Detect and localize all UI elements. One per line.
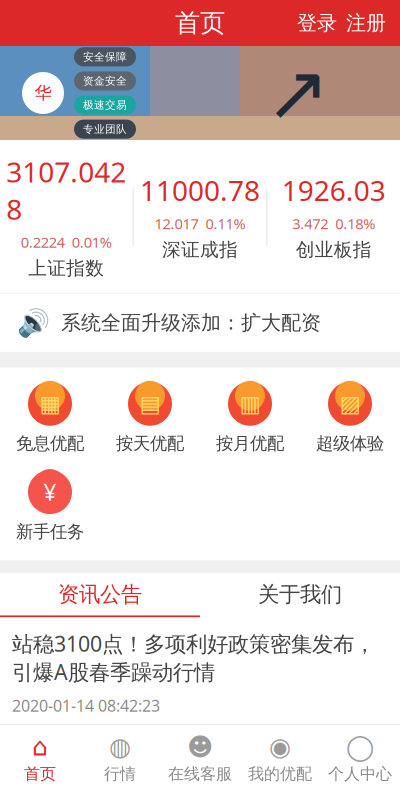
staticText: 个人中心 [328, 764, 392, 784]
button[interactable]: 关于我们 [200, 573, 400, 617]
button[interactable]: ◉ [240, 732, 320, 784]
staticText: ⌂ [32, 732, 48, 761]
button[interactable]: ☻ [160, 732, 240, 784]
staticText: 资讯公告 [58, 581, 142, 607]
staticText: 登录 [297, 11, 337, 35]
button[interactable]: ▥ [200, 382, 300, 454]
staticText: ¥ [43, 477, 56, 507]
staticText: 站稳3100点！多项利好政策密集发布，引爆A股春季躁动行情 [12, 629, 375, 686]
button[interactable]: ▦ [0, 382, 100, 454]
button[interactable]: 注册 [337, 11, 386, 35]
staticText: ▥ [239, 391, 260, 417]
staticText: 专业团队 [83, 123, 127, 136]
staticText: 0.11% [205, 214, 245, 233]
staticText: 行情 [104, 764, 136, 784]
staticText: 创业板指 [296, 238, 372, 261]
button[interactable]: ¥ [0, 470, 100, 542]
button[interactable]: 资讯公告 [0, 573, 200, 617]
button[interactable]: ▤ [100, 382, 200, 454]
staticText: ▦ [39, 391, 60, 417]
button[interactable]: ◯ [320, 732, 400, 784]
staticText: 关于我们 [258, 581, 342, 607]
staticText: 3107.0428 [6, 153, 126, 227]
staticText: 首页 [24, 764, 56, 784]
button[interactable]: 站稳3100点！多项利好政策密集发布，引爆A股春季躁动行情 [0, 617, 400, 716]
staticText: 新手任务 [16, 521, 84, 542]
staticText: 2020-01-14 08:42:23 [12, 695, 160, 716]
staticText: 12.017 [154, 214, 198, 233]
staticText: 3.472 [292, 214, 328, 233]
button[interactable]: 🔊 [0, 294, 400, 352]
staticText: ☻ [187, 732, 213, 761]
staticText: 按天优配 [116, 433, 184, 454]
staticText: ↗ [265, 49, 330, 137]
staticText: 系统全面升级添加：扩大配资 [61, 310, 321, 335]
staticText: ◯ [346, 732, 374, 761]
staticText: 0.01% [72, 232, 112, 252]
staticText: 超级体验 [316, 433, 384, 454]
button[interactable]: ▨ [300, 382, 400, 454]
staticText: 资金安全 [83, 74, 127, 87]
staticText: ◍ [109, 732, 131, 761]
staticText: 极速交易 [83, 98, 127, 112]
staticText: 按月优配 [216, 433, 284, 454]
staticText: 🔊 [17, 307, 50, 338]
staticText: 注册 [346, 11, 386, 35]
staticText: ▤ [139, 391, 160, 417]
staticText: 1926.03 [282, 172, 386, 209]
staticText: ▨ [339, 391, 360, 417]
staticText: 安全保障 [83, 50, 127, 63]
button[interactable]: ◍ [80, 732, 160, 784]
staticText: 11000.78 [140, 172, 260, 209]
staticText: 深证成指 [162, 238, 238, 261]
button[interactable]: ⌂ [0, 732, 80, 784]
staticText: 0.2224 [21, 232, 65, 252]
staticText: ◉ [269, 732, 291, 761]
staticText: 华 [34, 82, 51, 104]
staticText: 0.18% [335, 214, 375, 233]
staticText: 上证指数 [28, 257, 104, 280]
staticText: 免息优配 [16, 433, 84, 454]
button[interactable]: 登录 [297, 11, 337, 35]
staticText: 首页 [175, 7, 225, 38]
staticText: 在线客服 [168, 764, 232, 784]
staticText: 我的优配 [248, 764, 312, 784]
